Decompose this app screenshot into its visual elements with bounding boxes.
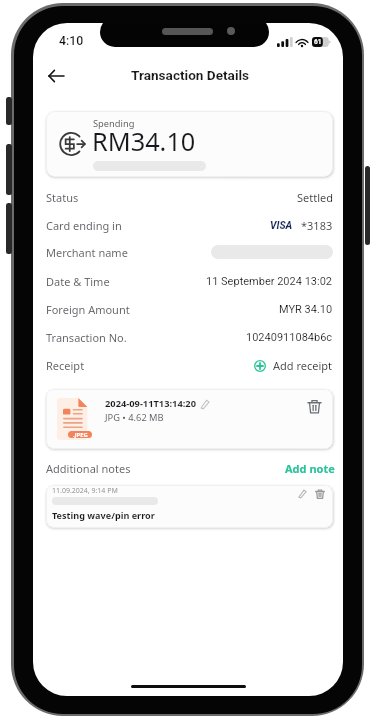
staticText: Transaction Details	[131, 67, 250, 83]
button[interactable]: Date & Time	[46, 267, 333, 295]
button[interactable]: Add note	[285, 461, 335, 476]
button[interactable]: Receipt	[46, 351, 333, 379]
button[interactable]: Delete note	[313, 487, 326, 500]
staticText: JPG • 4.62 MB	[105, 411, 164, 424]
staticText: *3183	[301, 218, 333, 233]
button[interactable]: Edit note	[296, 487, 309, 500]
staticText: Status	[46, 190, 79, 205]
staticText: .JPEG	[73, 431, 88, 438]
staticText: Transaction No.	[46, 330, 127, 345]
staticText: Add receipt	[273, 358, 333, 373]
button[interactable]: .JPEG	[46, 389, 333, 449]
staticText: Date & Time	[46, 274, 110, 289]
staticText: 2024-09-11T13:14:20	[105, 397, 196, 410]
staticText: 11 September 2024 13:02	[206, 275, 333, 288]
staticText: Additional notes	[46, 461, 131, 476]
button[interactable]: 11.09.2024, 9:14 PM	[46, 485, 333, 528]
staticText: MYR 34.10	[279, 303, 333, 316]
button[interactable]: Status	[46, 183, 333, 211]
staticText: Foreign Amount	[46, 302, 130, 317]
staticText: 11.09.2024, 9:14 PM	[52, 486, 118, 496]
staticText: Receipt	[46, 358, 85, 373]
button[interactable]: Back	[39, 59, 73, 93]
button[interactable]: Foreign Amount	[46, 295, 333, 323]
staticText: RM34.10	[92, 124, 196, 158]
staticText: 61	[314, 38, 322, 46]
staticText: Spending	[93, 117, 135, 130]
button[interactable]: Delete receipt	[303, 395, 325, 417]
button[interactable]: Add receipt	[254, 358, 333, 373]
button[interactable]: Merchant name	[46, 238, 333, 266]
staticText: 4:10	[59, 34, 84, 48]
button[interactable]: Card ending in	[46, 211, 333, 239]
staticText: Settled	[297, 190, 333, 205]
staticText: Merchant name	[46, 245, 128, 260]
button[interactable]: Spending	[46, 111, 333, 177]
button[interactable]: Transaction No.	[46, 323, 333, 351]
staticText: Testing wave/pin error	[52, 509, 155, 521]
staticText: VISA	[270, 220, 293, 232]
staticText: Card ending in	[46, 218, 122, 233]
staticText: 10240911084b6c	[246, 331, 333, 344]
